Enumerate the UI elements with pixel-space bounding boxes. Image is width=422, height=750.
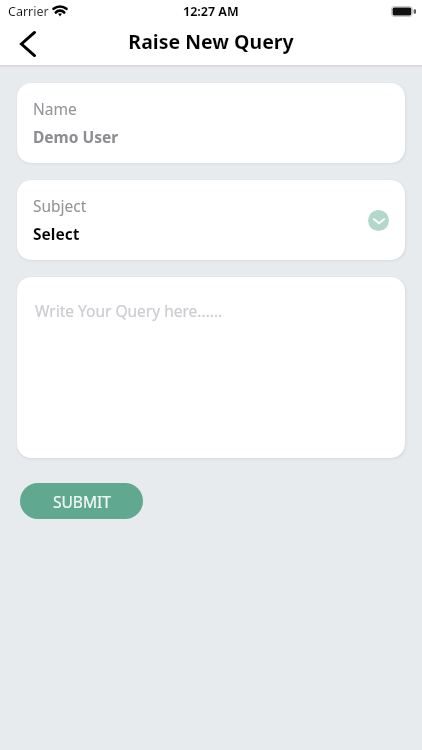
staticText: Carrier [8, 3, 49, 20]
button[interactable]: Select subject [368, 210, 389, 231]
staticText: 12:27 AM [183, 3, 239, 20]
button[interactable]: Back [0, 22, 56, 65]
staticText: Subject [33, 195, 87, 216]
staticText: Demo User [33, 126, 119, 147]
staticText: Select [33, 223, 80, 244]
staticText: Name [33, 98, 77, 119]
button[interactable]: SUBMIT [20, 483, 143, 519]
staticText: Raise New Query [128, 28, 294, 55]
staticText: Write Your Query here...... [35, 300, 223, 321]
staticText: SUBMIT [53, 491, 111, 512]
